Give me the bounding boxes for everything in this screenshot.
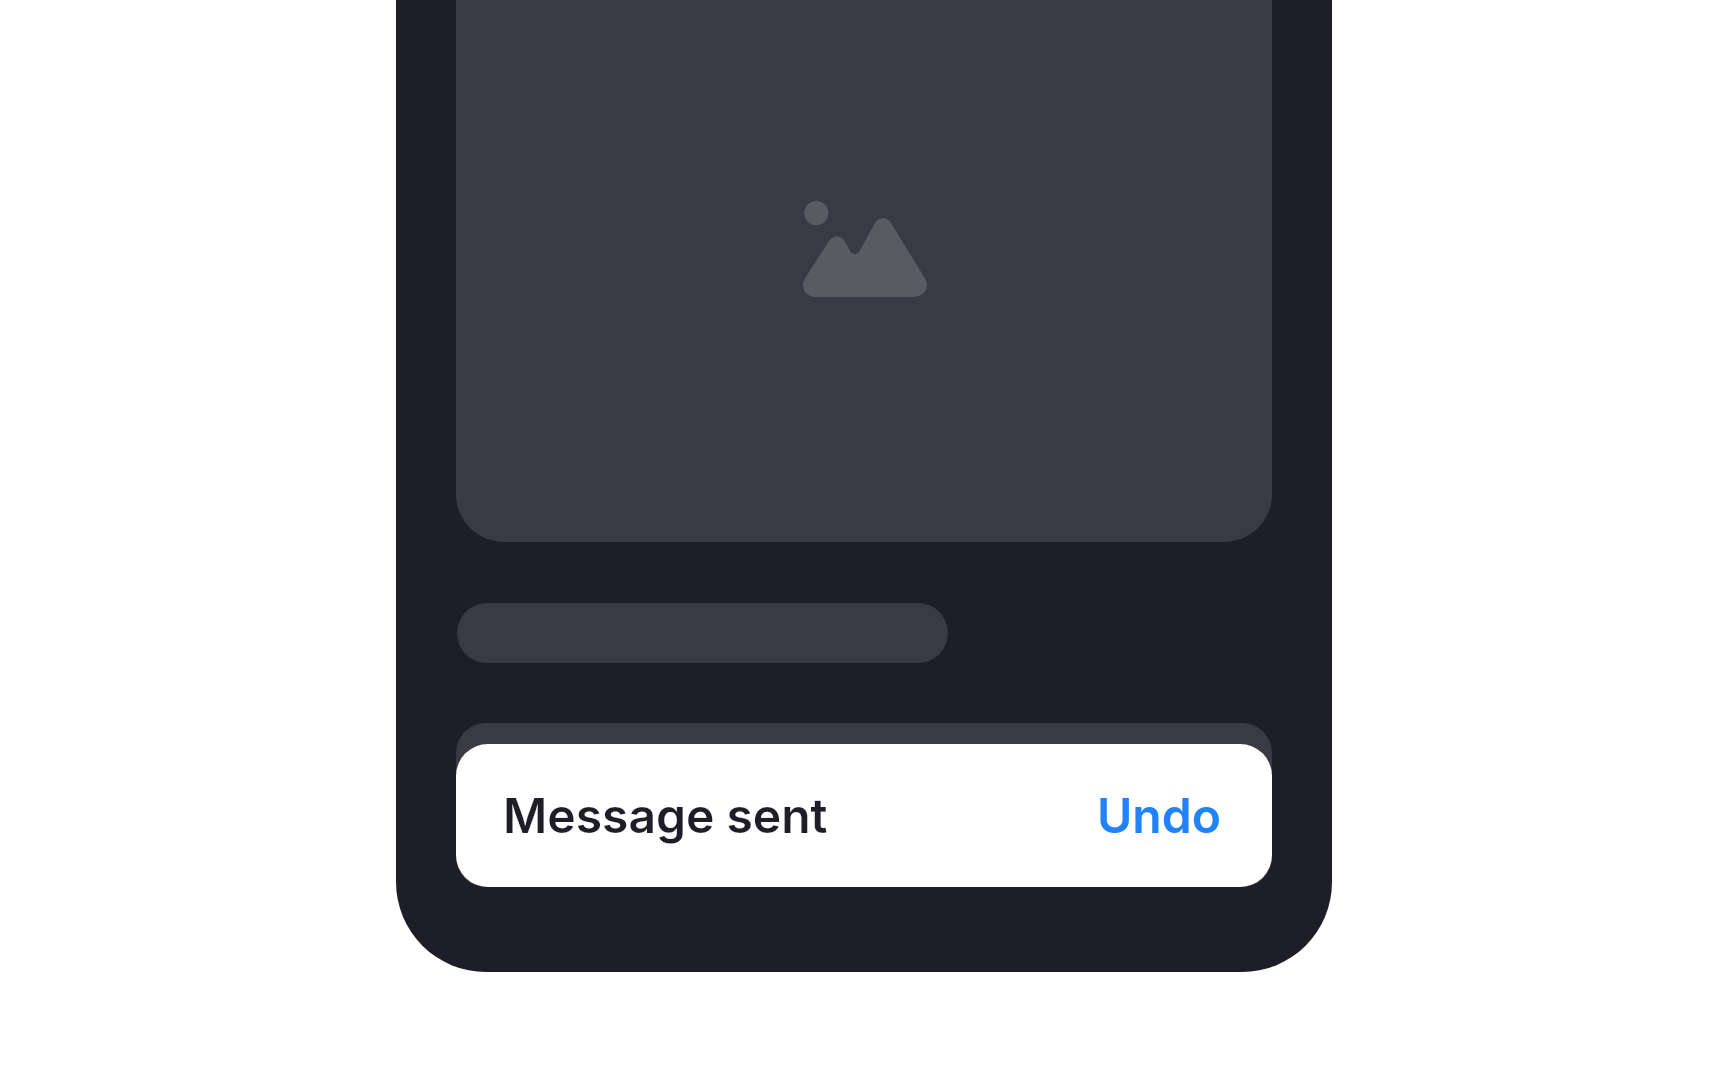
button[interactable]: Next post bbox=[456, 723, 1272, 887]
staticText: Undo bbox=[1097, 786, 1221, 844]
button[interactable]: Undo bbox=[1077, 766, 1241, 864]
button[interactable]: Photo attachment bbox=[456, 0, 1272, 542]
staticText: Message sent bbox=[503, 786, 828, 844]
